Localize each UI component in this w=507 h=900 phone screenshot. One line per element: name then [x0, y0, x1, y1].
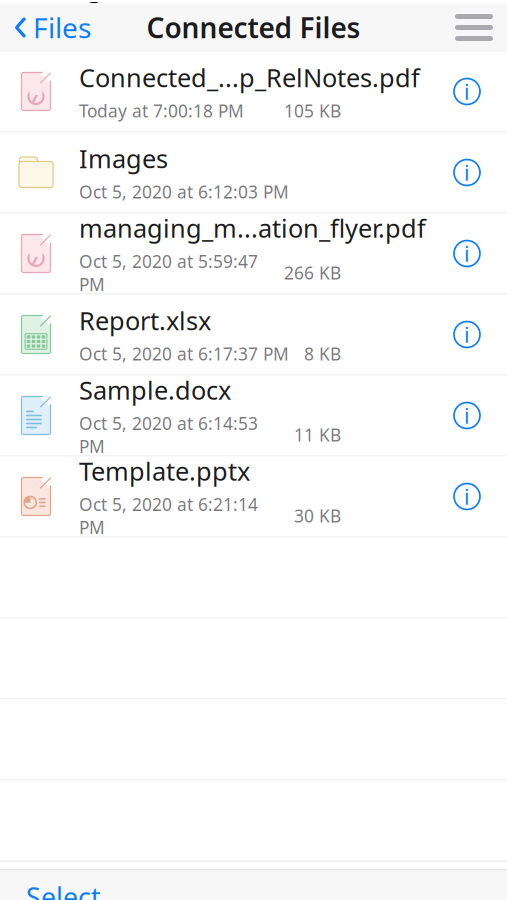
- staticText: Oct 5, 2020 at 6:14:53 PM: [79, 412, 258, 458]
- button[interactable]: More Info: [441, 141, 493, 203]
- button[interactable]: Images: [0, 132, 507, 213]
- staticText: Report.xlsx: [79, 304, 211, 337]
- button[interactable]: More Info: [441, 303, 493, 365]
- staticText: i: [464, 158, 470, 187]
- staticText: Template.pptx: [79, 454, 250, 488]
- button[interactable]: More Info: [441, 60, 493, 122]
- staticText: Files: [33, 9, 91, 46]
- staticText: Connected Files: [146, 9, 360, 46]
- staticText: Sample.docx: [79, 373, 231, 407]
- button[interactable]: Connected_...p_RelNotes.pdf: [0, 51, 507, 132]
- staticText: Select: [26, 879, 101, 900]
- staticText: Oct 5, 2020 at 6:17:37 PM: [79, 342, 289, 365]
- staticText: 11 KB: [294, 423, 341, 446]
- button[interactable]: Menu: [441, 4, 507, 50]
- staticText: i: [464, 320, 470, 349]
- staticText: Oct 5, 2020 at 6:21:14 PM: [79, 493, 258, 539]
- staticText: Images: [79, 142, 168, 175]
- staticText: 105 KB: [284, 99, 341, 122]
- button[interactable]: Files: [0, 4, 105, 50]
- staticText: i: [464, 77, 470, 106]
- button[interactable]: Sample.docx: [0, 375, 507, 456]
- staticText: Connected_...p_RelNotes.pdf: [79, 61, 420, 94]
- staticText: 266 KB: [284, 261, 341, 284]
- button[interactable]: managing_m...ation_flyer.pdf: [0, 213, 507, 294]
- staticText: 30 KB: [294, 504, 341, 527]
- staticText: i: [464, 482, 470, 511]
- button[interactable]: More Info: [441, 384, 493, 446]
- staticText: Oct 5, 2020 at 6:12:03 PM: [79, 180, 289, 203]
- button[interactable]: Report.xlsx: [0, 294, 507, 375]
- button[interactable]: More Info: [441, 222, 493, 284]
- button[interactable]: Select: [0, 869, 127, 900]
- staticText: Today at 7:00:18 PM: [79, 99, 244, 122]
- staticText: 8 KB: [304, 342, 341, 365]
- staticText: managing_m...ation_flyer.pdf: [79, 211, 426, 245]
- button[interactable]: More Info: [441, 465, 493, 527]
- staticText: i: [464, 401, 470, 430]
- button[interactable]: Template.pptx: [0, 456, 507, 537]
- staticText: Oct 5, 2020 at 5:59:47 PM: [79, 250, 258, 296]
- staticText: i: [464, 239, 470, 268]
